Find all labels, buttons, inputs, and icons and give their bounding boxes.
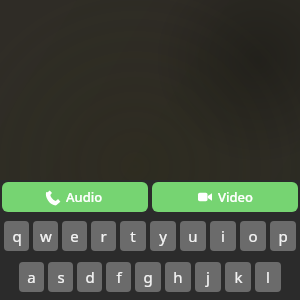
button[interactable]: s xyxy=(48,262,73,292)
staticText: Audio xyxy=(66,188,103,206)
staticText: t xyxy=(130,226,136,246)
staticText: q xyxy=(12,226,22,246)
button[interactable]: d xyxy=(77,262,102,292)
staticText: s xyxy=(57,267,65,287)
button[interactable]: e xyxy=(62,221,87,251)
button[interactable]: u xyxy=(180,221,206,251)
button[interactable]: j xyxy=(195,262,221,292)
staticText: j xyxy=(206,267,210,287)
button[interactable]: f xyxy=(106,262,131,292)
button[interactable]: a xyxy=(19,262,44,292)
button[interactable]: w xyxy=(33,221,58,251)
button[interactable]: i xyxy=(210,221,236,251)
staticText: d xyxy=(85,267,95,287)
staticText: r xyxy=(100,226,107,246)
button[interactable]: l xyxy=(255,262,281,292)
button[interactable]: p xyxy=(270,221,296,251)
button[interactable]: o xyxy=(240,221,266,251)
button[interactable]: q xyxy=(4,221,29,251)
staticText: l xyxy=(266,267,270,287)
staticText: w xyxy=(40,226,52,246)
button[interactable]: k xyxy=(225,262,251,292)
staticText: g xyxy=(143,267,153,287)
button[interactable]: Audio xyxy=(2,182,148,212)
button[interactable]: r xyxy=(91,221,116,251)
button[interactable]: Video xyxy=(152,182,298,212)
button[interactable]: t xyxy=(120,221,146,251)
button[interactable]: h xyxy=(165,262,191,292)
staticText: Video xyxy=(218,188,253,206)
button[interactable]: g xyxy=(135,262,161,292)
staticText: y xyxy=(159,226,167,246)
staticText: a xyxy=(27,267,36,287)
staticText: k xyxy=(234,267,243,287)
staticText: p xyxy=(278,226,288,246)
button[interactable]: y xyxy=(150,221,176,251)
staticText: f xyxy=(116,267,122,287)
staticText: o xyxy=(248,226,258,246)
staticText: e xyxy=(70,226,79,246)
staticText: h xyxy=(173,267,183,287)
staticText: i xyxy=(221,226,225,246)
staticText: u xyxy=(188,226,198,246)
